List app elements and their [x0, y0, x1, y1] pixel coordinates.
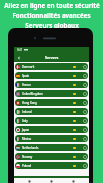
- button[interactable]: France: [15, 81, 88, 88]
- staticText: Serveurs globaux: [25, 21, 79, 29]
- button[interactable]: Italy: [15, 117, 88, 124]
- button[interactable]: Netherlands: [15, 144, 88, 151]
- staticText: Servers: [45, 55, 59, 60]
- button[interactable]: Ireland: [15, 108, 88, 115]
- button[interactable]: UnitedKingdom: [15, 90, 88, 97]
- staticText: UnitedKingdom: [22, 92, 43, 96]
- staticText: Hong Kong: [22, 101, 37, 105]
- button[interactable]: Mexico: [15, 135, 88, 142]
- staticText: Fonctionnalités avancées: [12, 11, 91, 19]
- button[interactable]: Hong Kong: [15, 99, 88, 106]
- staticText: Mexico: [22, 137, 32, 141]
- button[interactable]: Norway: [15, 153, 88, 160]
- staticText: Poland: [22, 164, 32, 168]
- button[interactable]: Japan: [15, 126, 88, 133]
- button[interactable]: Denmark: [15, 63, 88, 70]
- staticText: Norway: [22, 155, 33, 159]
- staticText: Spain: [22, 74, 30, 78]
- staticText: Japan: [22, 128, 30, 132]
- button[interactable]: Poland: [15, 162, 88, 169]
- button[interactable]: Nav 0: [28, 180, 31, 183]
- staticText: Allez en ligne en toute sécurité: [4, 1, 100, 9]
- button[interactable]: Nav 1: [50, 180, 53, 183]
- staticText: France: [22, 83, 31, 87]
- staticText: Netherlands: [22, 146, 39, 150]
- button[interactable]: Spain: [15, 72, 88, 79]
- staticText: Denmark: [22, 65, 35, 69]
- staticText: Italy: [22, 119, 28, 123]
- staticText: 9:41: [17, 48, 23, 52]
- staticText: Ireland: [22, 110, 32, 114]
- button[interactable]: Nav 2: [72, 180, 75, 183]
- button[interactable]: Back: [17, 56, 21, 60]
